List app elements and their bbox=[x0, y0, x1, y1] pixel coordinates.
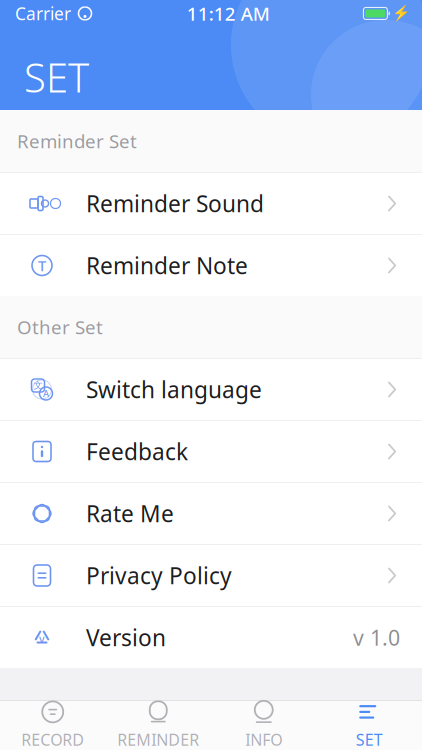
staticText: T bbox=[38, 256, 46, 275]
button[interactable]: T bbox=[0, 235, 422, 296]
staticText: Privacy Policy bbox=[86, 560, 232, 590]
button[interactable]: RECORD bbox=[0, 700, 105, 750]
button[interactable]: SET bbox=[316, 700, 422, 750]
button[interactable]: Feedback bbox=[0, 421, 422, 482]
button[interactable]: REMINDER bbox=[105, 700, 211, 750]
button[interactable]: INFO bbox=[211, 700, 316, 750]
staticText: INFO bbox=[245, 729, 282, 750]
staticText: Other Set bbox=[17, 315, 103, 339]
staticText: Reminder Sound bbox=[86, 188, 264, 218]
staticText: Feedback bbox=[86, 436, 188, 466]
staticText: 文 bbox=[33, 380, 42, 391]
button[interactable]: 文 bbox=[0, 359, 422, 420]
staticText: REMINDER bbox=[117, 729, 199, 750]
staticText: Reminder Note bbox=[86, 250, 248, 280]
staticText: RECORD bbox=[21, 729, 84, 750]
staticText: Switch language bbox=[86, 374, 262, 404]
staticText: Carrier bbox=[15, 2, 71, 25]
button[interactable]: Reminder Sound bbox=[0, 173, 422, 234]
button[interactable]: Rate Me bbox=[0, 483, 422, 544]
staticText: 11:12 AM bbox=[187, 1, 270, 26]
staticText: ⚡ bbox=[392, 5, 410, 22]
staticText: A bbox=[43, 387, 49, 400]
staticText: v 1.0 bbox=[353, 623, 400, 652]
staticText: SET bbox=[24, 50, 89, 103]
staticText: Reminder Set bbox=[17, 129, 137, 153]
staticText: Version bbox=[86, 622, 166, 652]
button[interactable]: v bbox=[0, 607, 422, 668]
staticText: Rate Me bbox=[86, 498, 174, 528]
button[interactable]: Privacy Policy bbox=[0, 545, 422, 606]
staticText: SET bbox=[356, 729, 383, 750]
staticText: v bbox=[39, 631, 45, 646]
